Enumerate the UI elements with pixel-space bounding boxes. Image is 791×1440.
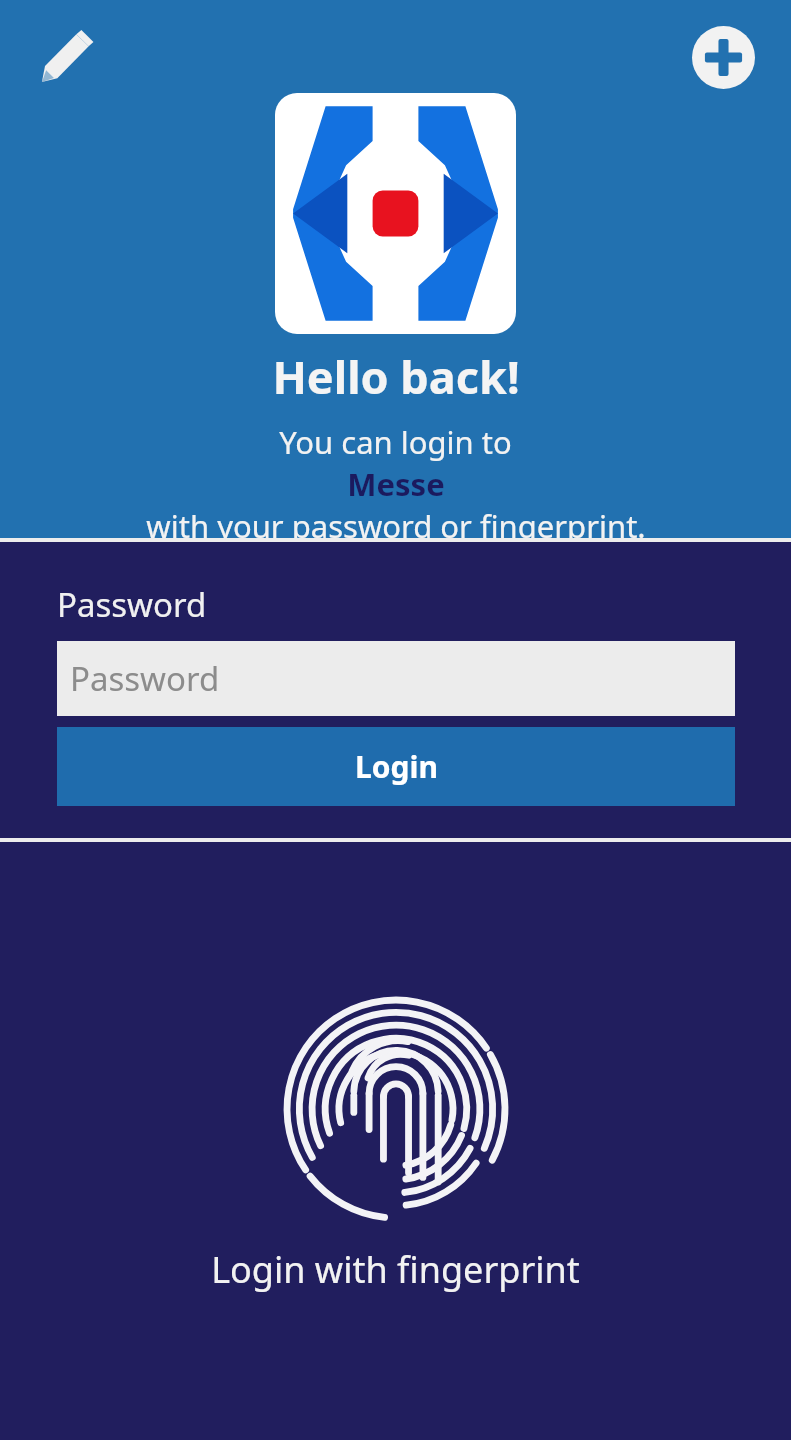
staticText: Login xyxy=(355,746,438,787)
button[interactable]: Edit xyxy=(28,20,104,96)
button[interactable]: Add xyxy=(692,26,755,89)
staticText: Login with fingerprint xyxy=(211,1245,580,1294)
button[interactable]: Password xyxy=(57,641,735,716)
staticText: Hello back! xyxy=(272,346,520,407)
staticText: You can login to xyxy=(279,421,512,463)
staticText: Password xyxy=(70,656,220,701)
button[interactable]: Login xyxy=(57,727,735,806)
button[interactable]: Login with fingerprint xyxy=(0,842,791,1440)
staticText: with your password or fingerprint. xyxy=(146,505,646,538)
staticText: Messe xyxy=(347,463,445,505)
staticText: Password xyxy=(57,582,207,627)
